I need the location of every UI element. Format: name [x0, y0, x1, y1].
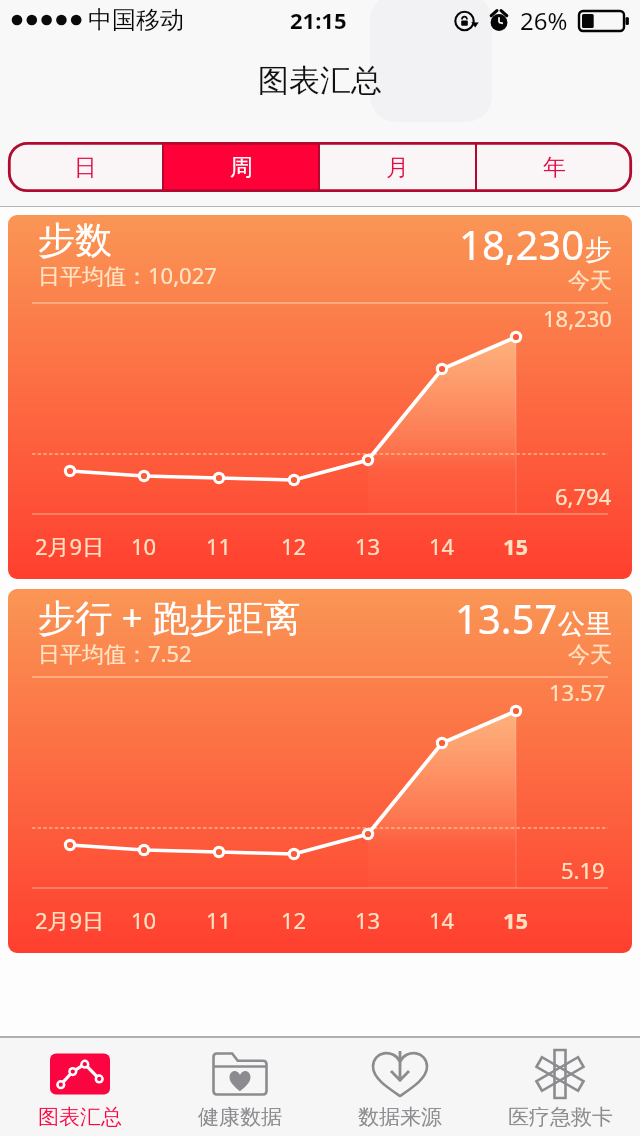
staticText: 月	[386, 153, 409, 182]
staticText: 今天	[568, 641, 612, 669]
button[interactable]: Data sources	[320, 1038, 480, 1136]
staticText: 15	[503, 905, 529, 935]
staticText: 周	[230, 153, 253, 182]
button[interactable]: 年	[477, 142, 632, 192]
staticText: 11	[206, 905, 232, 935]
staticText: 日平均值：10,027	[38, 260, 217, 290]
staticText: 13.57	[549, 677, 606, 707]
staticText: 21:15	[290, 5, 347, 35]
button[interactable]: 步行 + 跑步距离	[8, 589, 632, 953]
staticText: 5.19	[561, 855, 605, 885]
button[interactable]: Charts summary	[0, 1038, 160, 1136]
staticText: 数据来源	[358, 1104, 442, 1130]
staticText: 12	[281, 531, 307, 561]
staticText: 图表汇总	[38, 1104, 122, 1130]
staticText: 13.57	[455, 591, 558, 645]
button[interactable]: 日	[8, 142, 162, 192]
staticText: 日	[74, 153, 97, 182]
staticText: 图表汇总	[258, 61, 382, 100]
button[interactable]: Health data	[160, 1038, 320, 1136]
staticText: 10	[131, 531, 157, 561]
staticText: 13	[355, 531, 381, 561]
staticText: 2月9日	[35, 905, 105, 935]
staticText: 15	[503, 531, 529, 561]
staticText: 12	[281, 905, 307, 935]
staticText: 步	[585, 233, 612, 267]
staticText: 6,794	[555, 481, 612, 511]
staticText: 日平均值：7.52	[38, 638, 192, 668]
staticText: 步行 + 跑步距离	[38, 591, 301, 642]
button[interactable]: Medical ID	[480, 1038, 640, 1136]
staticText: 公里	[558, 607, 612, 641]
staticText: 26%	[520, 4, 568, 37]
staticText: 13	[355, 905, 381, 935]
button[interactable]: 周	[164, 142, 318, 192]
staticText: 步数	[38, 217, 112, 264]
staticText: 10	[131, 905, 157, 935]
staticText: 11	[206, 531, 232, 561]
staticText: 中国移动	[88, 5, 184, 35]
staticText: 年	[543, 153, 566, 182]
button[interactable]: 月	[320, 142, 475, 192]
staticText: 14	[429, 905, 455, 935]
staticText: 18,230	[459, 217, 585, 271]
staticText: 2月9日	[35, 531, 105, 561]
button[interactable]: 步数	[8, 215, 632, 579]
staticText: 医疗急救卡	[508, 1104, 613, 1130]
staticText: 今天	[568, 267, 612, 295]
staticText: 14	[429, 531, 455, 561]
staticText: 健康数据	[198, 1104, 282, 1130]
staticText: 18,230	[543, 303, 612, 333]
